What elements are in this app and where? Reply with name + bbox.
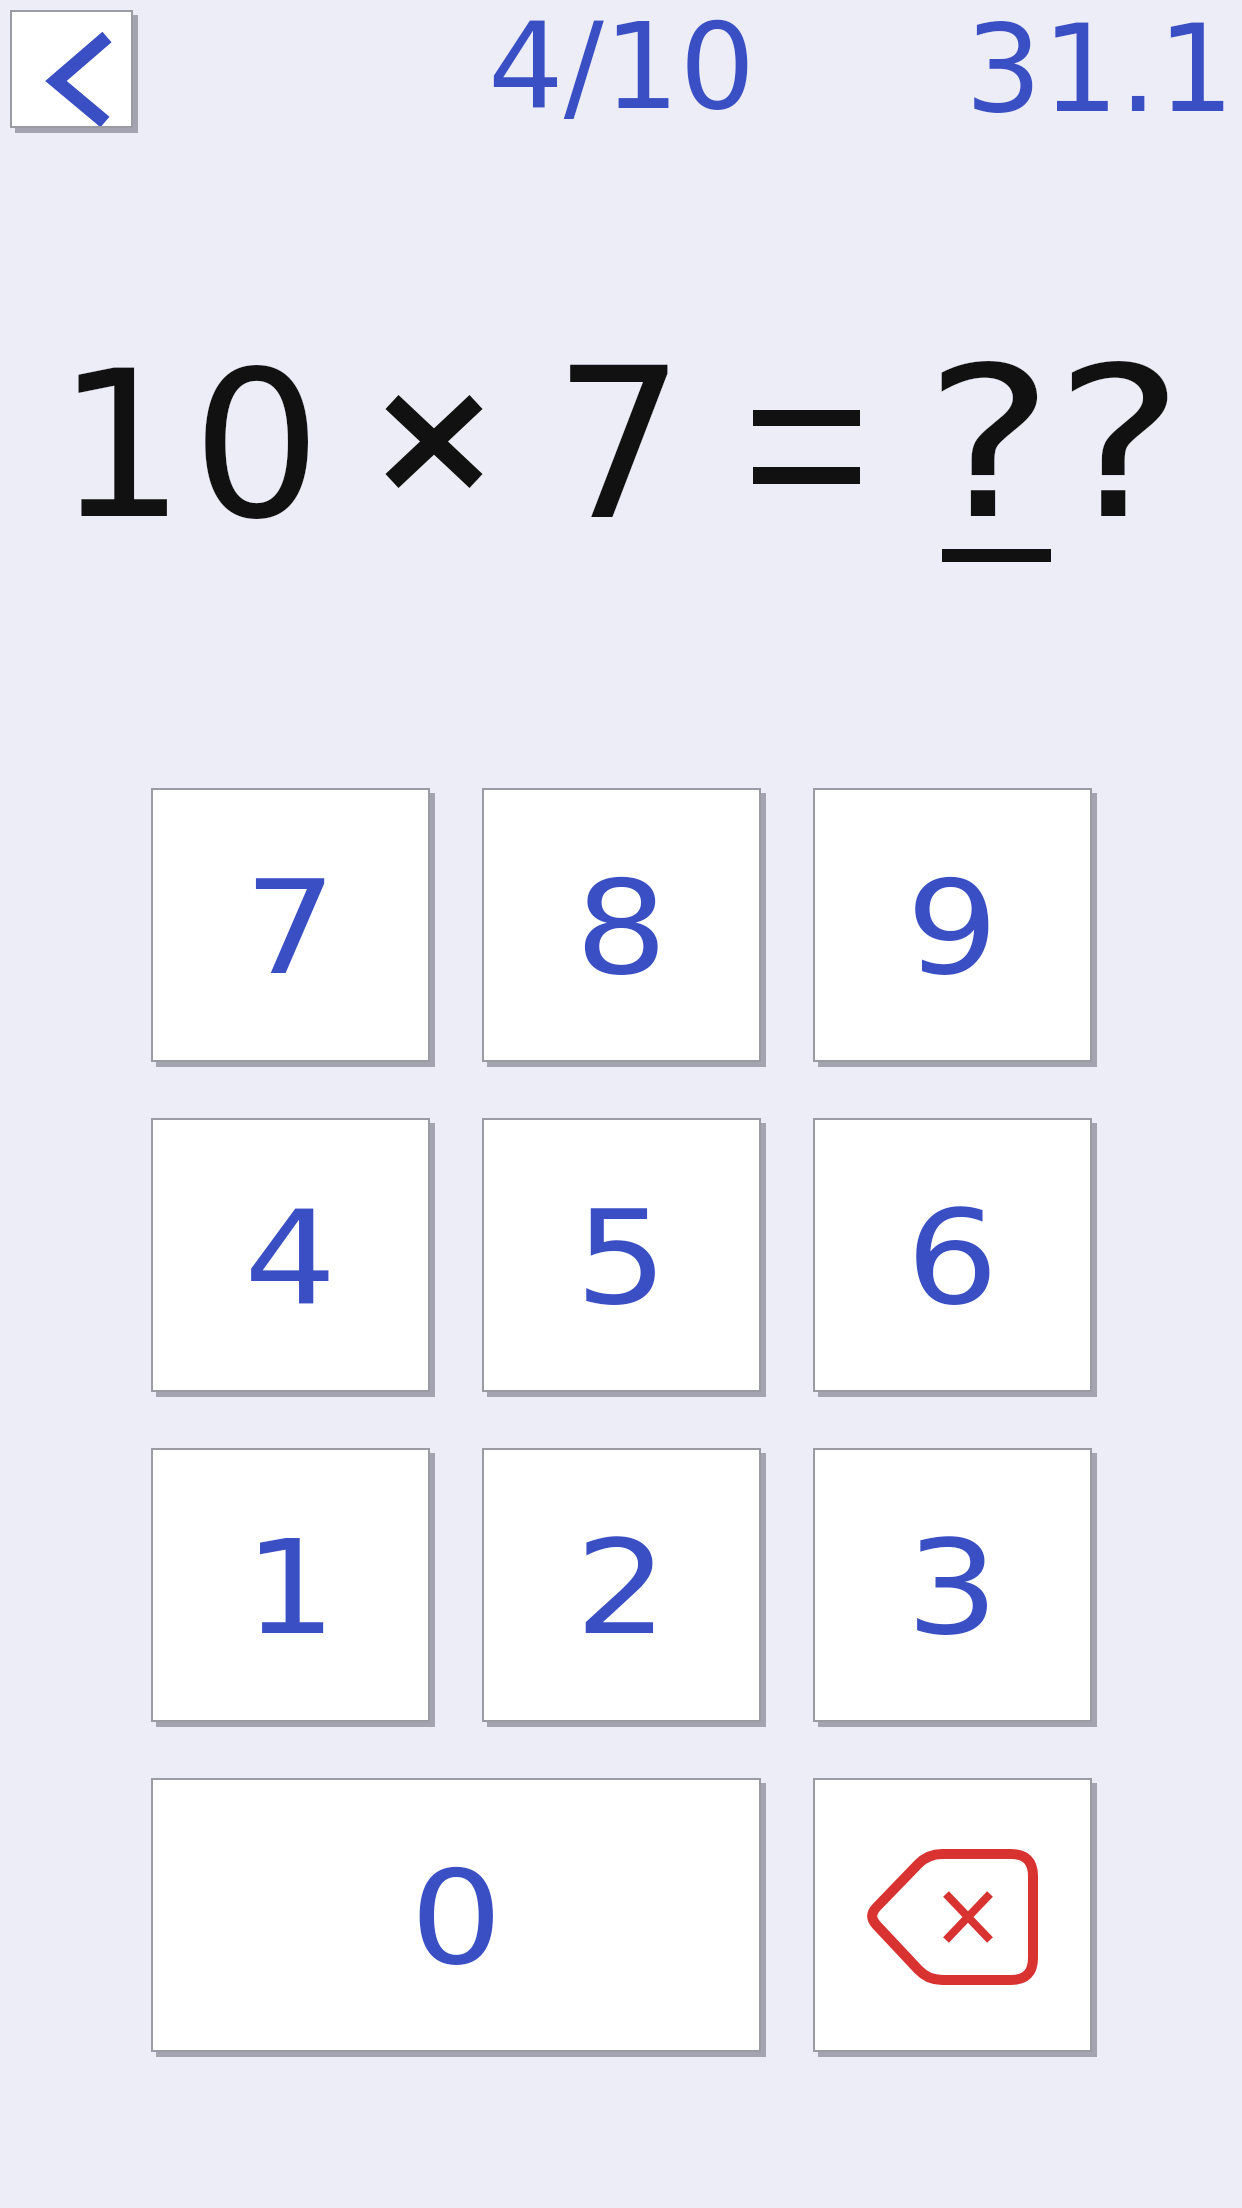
button[interactable]: 2 [482, 1448, 761, 1722]
button[interactable]: 6 [813, 1118, 1092, 1392]
staticText: 31.1 [965, 0, 1235, 140]
button[interactable]: 4 [151, 1118, 430, 1392]
staticText: 9 [906, 852, 999, 1003]
staticText: 0 [410, 1842, 503, 1993]
button[interactable]: 9 [813, 788, 1092, 1062]
button[interactable]: 0 [151, 1778, 761, 2052]
button[interactable] [10, 10, 133, 128]
staticText: 10 [56, 327, 328, 564]
staticText: 7 [553, 324, 686, 566]
staticText: 3 [906, 1512, 999, 1663]
staticText: 8 [575, 852, 668, 1003]
button[interactable]: 5 [482, 1118, 761, 1392]
staticText: 2 [575, 1512, 668, 1663]
staticText: ?? [924, 323, 1185, 565]
button[interactable]: 3 [813, 1448, 1092, 1722]
staticText: 4 [244, 1182, 337, 1333]
button[interactable]: 7 [151, 788, 430, 1062]
staticText: 7 [244, 852, 337, 1003]
staticText: 5 [575, 1182, 668, 1333]
staticText: 1 [244, 1512, 337, 1663]
staticText: 4/10 [488, 0, 756, 137]
button[interactable]: 1 [151, 1448, 430, 1722]
staticText: 6 [906, 1182, 999, 1333]
button[interactable]: 8 [482, 788, 761, 1062]
button[interactable] [813, 1778, 1092, 2052]
